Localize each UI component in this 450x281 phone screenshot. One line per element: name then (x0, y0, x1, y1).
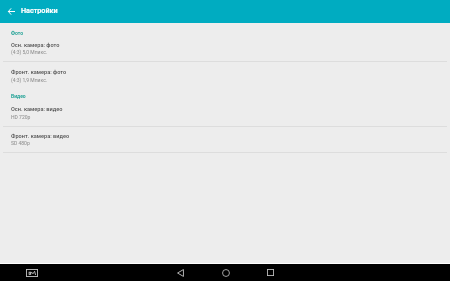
staticText: HD 720p (11, 114, 31, 120)
staticText: Осн. камера: видео (11, 106, 63, 113)
button[interactable]: Screenshot (24, 265, 40, 281)
staticText: (4:3) 5,0 Мпикс. (11, 49, 48, 55)
staticText: Фронт. камера: фото (11, 69, 67, 76)
button[interactable]: Back (171, 264, 189, 281)
button[interactable]: Фронт. камера: фото (0, 62, 450, 87)
button[interactable]: Осн. камера: фото (0, 35, 450, 61)
staticText: Видео (11, 93, 26, 99)
button[interactable]: Осн. камера: видео (0, 100, 450, 126)
staticText: Фронт. камера: видео (11, 133, 70, 140)
staticText: SD 480p (11, 140, 30, 146)
button[interactable]: Home (216, 264, 235, 281)
button[interactable]: Recent apps (261, 264, 279, 281)
staticText: (4:3) 1,9 Мпикс. (11, 77, 48, 83)
staticText: Фото (11, 30, 24, 36)
staticText: Настройки (21, 6, 58, 14)
button[interactable]: Back (3, 0, 20, 23)
button[interactable]: Фронт. камера: видео (0, 127, 450, 152)
staticText: Осн. камера: фото (11, 42, 60, 49)
